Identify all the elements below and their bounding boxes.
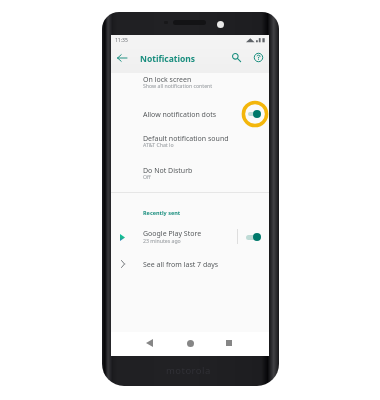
button[interactable]: Recent apps bbox=[220, 334, 238, 352]
button[interactable]: Search bbox=[225, 46, 248, 69]
staticText: Recently sent bbox=[143, 209, 181, 216]
button[interactable]: Back bbox=[140, 334, 158, 352]
staticText: 11:35 bbox=[115, 37, 128, 44]
staticText: 23 minutes ago bbox=[143, 237, 181, 244]
staticText: AT&T Chat lo bbox=[143, 141, 174, 148]
button[interactable]: Help bbox=[247, 46, 270, 69]
staticText: Google Play Store bbox=[143, 229, 202, 239]
button[interactable]: Allow notification dots bbox=[111, 101, 269, 125]
button[interactable]: On lock screen bbox=[111, 68, 269, 96]
button[interactable]: Home bbox=[181, 334, 199, 352]
button[interactable]: Back bbox=[110, 46, 133, 69]
button[interactable]: Do Not Disturb bbox=[111, 159, 269, 187]
staticText: motorola bbox=[166, 364, 211, 377]
staticText: Show all notification content bbox=[143, 82, 213, 89]
button[interactable]: See all from last 7 days bbox=[111, 254, 269, 274]
staticText: Default notification sound bbox=[143, 134, 229, 144]
staticText: See all from last 7 days bbox=[143, 260, 219, 270]
staticText: Allow notification dots bbox=[143, 110, 217, 120]
staticText: Do Not Disturb bbox=[143, 166, 193, 176]
button[interactable]: Google Play Store notifications bbox=[247, 233, 261, 241]
button[interactable]: Allow notification dots bbox=[241, 100, 269, 128]
staticText: Notifications bbox=[140, 53, 196, 65]
staticText: On lock screen bbox=[143, 75, 192, 85]
button[interactable]: Google Play Store bbox=[111, 225, 269, 247]
button[interactable]: Default notification sound bbox=[111, 127, 269, 155]
staticText: Off bbox=[143, 173, 151, 180]
